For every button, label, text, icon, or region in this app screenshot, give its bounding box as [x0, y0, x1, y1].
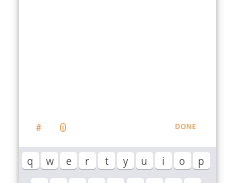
staticText: y	[123, 154, 129, 168]
staticText: u	[141, 154, 148, 168]
button[interactable]	[107, 178, 124, 183]
staticText: p	[198, 154, 205, 168]
staticText: r	[85, 154, 90, 168]
button[interactable]	[31, 178, 48, 183]
button[interactable]: w	[41, 152, 58, 169]
button[interactable]	[184, 178, 201, 183]
button[interactable]: i	[155, 152, 172, 169]
button[interactable]: y	[117, 152, 134, 169]
staticText: DONE	[175, 122, 197, 132]
button[interactable]	[69, 178, 86, 183]
button[interactable]	[127, 178, 144, 183]
button[interactable]	[50, 178, 67, 183]
staticText: e	[66, 154, 72, 168]
button[interactable]: #	[31, 119, 47, 135]
button[interactable]: u	[136, 152, 153, 169]
button[interactable]: q	[22, 152, 39, 169]
button[interactable]: t	[98, 152, 115, 169]
button[interactable]: DONE	[172, 119, 200, 135]
button[interactable]	[165, 178, 182, 183]
button[interactable]: e	[60, 152, 77, 169]
staticText: w	[46, 154, 54, 168]
button[interactable]	[55, 119, 71, 135]
staticText: o	[179, 154, 186, 168]
button[interactable]	[88, 178, 105, 183]
staticText: q	[27, 154, 34, 168]
button[interactable]	[146, 178, 163, 183]
button[interactable]: p	[193, 152, 210, 169]
staticText: i	[162, 154, 165, 168]
staticText: t	[105, 154, 109, 168]
button[interactable]: r	[79, 152, 96, 169]
button[interactable]: o	[174, 152, 191, 169]
staticText: #	[36, 122, 42, 133]
